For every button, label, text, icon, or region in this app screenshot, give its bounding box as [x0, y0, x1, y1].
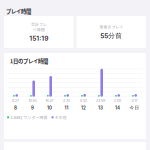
staticText: 10:55	[28, 99, 36, 103]
staticText: プレイ時間	[6, 7, 31, 15]
staticText: 13	[98, 105, 103, 110]
staticText: 12	[81, 105, 86, 110]
staticText: 9	[31, 105, 34, 110]
staticText: 最後のプレイ	[99, 24, 123, 29]
staticText: 今日	[129, 105, 139, 111]
staticText: その他	[55, 115, 67, 120]
staticText: 8	[14, 105, 17, 110]
staticText: 0:27	[12, 99, 19, 103]
staticText: 2:32	[63, 99, 70, 103]
staticText: 23:59	[96, 99, 105, 103]
staticText: 0:17	[131, 99, 137, 103]
staticText: 0:32	[80, 99, 87, 103]
staticText: 10	[47, 105, 52, 110]
staticText: 14	[115, 105, 120, 110]
staticText: Galaxy ワンダー時間	[10, 115, 47, 120]
staticText: 2:00	[114, 99, 121, 103]
staticText: 11	[64, 105, 68, 110]
staticText: 合計プレイ時間	[31, 22, 47, 32]
staticText: 151:19	[29, 34, 48, 42]
staticText: 55分前	[100, 31, 122, 40]
staticText: 1日のプレイ時間	[10, 57, 48, 65]
staticText: 16:47	[45, 99, 53, 103]
